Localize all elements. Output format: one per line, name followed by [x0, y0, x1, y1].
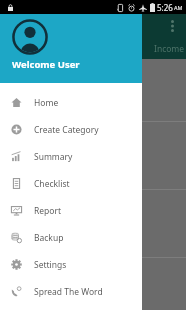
button[interactable]: More options: [166, 18, 178, 34]
staticText: Create Category: [34, 124, 99, 136]
staticText: AM: [174, 4, 183, 11]
staticText: Report: [34, 205, 62, 217]
button[interactable]: Create Category: [0, 116, 142, 143]
staticText: Backup: [34, 232, 64, 244]
button[interactable]: Settings: [0, 251, 142, 278]
button[interactable]: Backup: [0, 224, 142, 251]
staticText: Income: [154, 43, 185, 55]
button[interactable]: Cards: [0, 258, 186, 310]
button[interactable]: Summary: [0, 143, 142, 170]
staticText: 5:26: [157, 2, 173, 13]
button[interactable]: Bills: [0, 122, 186, 189]
button[interactable]: Report: [0, 197, 142, 224]
button[interactable]: Checklist: [0, 170, 142, 197]
button[interactable]: Spread The Word: [0, 278, 142, 305]
staticText: Summary: [34, 151, 73, 163]
button[interactable]: Automobile: [0, 59, 186, 121]
button[interactable]: Shopping: [0, 190, 186, 257]
staticText: Spread The Word: [34, 286, 103, 298]
staticText: Welcome User: [12, 58, 80, 71]
staticText: Checklist: [34, 178, 70, 190]
button[interactable]: Home: [0, 89, 142, 116]
staticText: Home: [34, 97, 59, 109]
staticText: Settings: [34, 259, 67, 271]
